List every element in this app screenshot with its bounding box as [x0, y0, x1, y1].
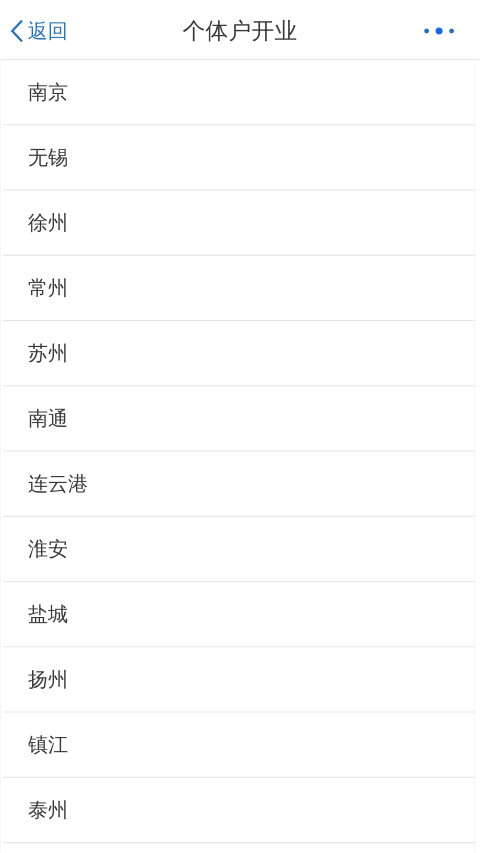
- button[interactable]: 连云港: [0, 452, 480, 517]
- button[interactable]: 泰州: [0, 778, 480, 843]
- staticText: 返回: [28, 19, 68, 43]
- staticText: 扬州: [28, 667, 68, 692]
- staticText: 苏州: [28, 341, 68, 365]
- staticText: 连云港: [28, 471, 88, 496]
- button[interactable]: 无锡: [0, 125, 480, 191]
- button[interactable]: 镇江: [0, 713, 480, 778]
- button[interactable]: 淮安: [0, 517, 480, 582]
- staticText: 南京: [28, 80, 68, 104]
- button[interactable]: More options: [407, 13, 480, 48]
- staticText: 徐州: [28, 210, 68, 235]
- button[interactable]: 扬州: [0, 647, 480, 713]
- staticText: 镇江: [28, 732, 68, 757]
- button[interactable]: 常州: [0, 256, 480, 321]
- staticText: 常州: [28, 276, 68, 300]
- button[interactable]: 南京: [0, 60, 480, 125]
- button[interactable]: 盐城: [0, 582, 480, 647]
- staticText: 无锡: [28, 145, 68, 170]
- staticText: 淮安: [28, 537, 68, 561]
- button[interactable]: 南通: [0, 386, 480, 452]
- button[interactable]: 返回: [0, 9, 76, 53]
- staticText: 盐城: [28, 602, 68, 626]
- button[interactable]: 徐州: [0, 191, 480, 256]
- staticText: 南通: [28, 406, 68, 431]
- staticText: 个体户开业: [182, 17, 297, 45]
- staticText: 泰州: [28, 798, 68, 822]
- button[interactable]: 苏州: [0, 321, 480, 386]
